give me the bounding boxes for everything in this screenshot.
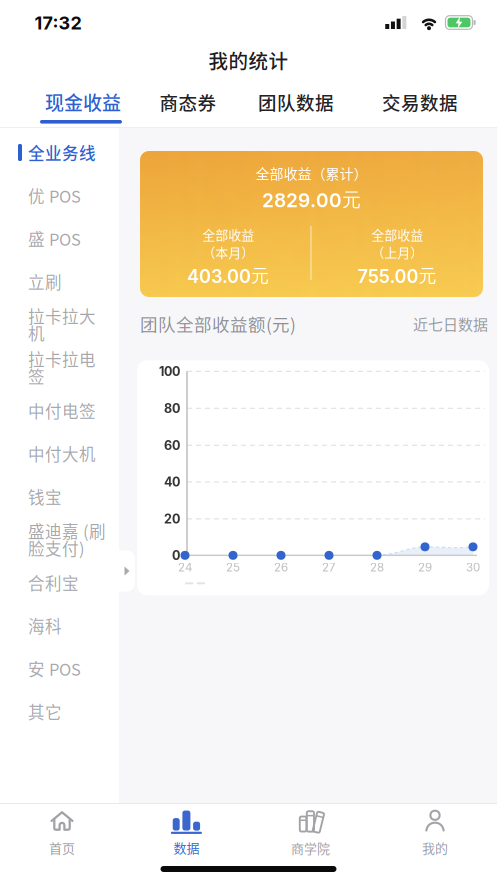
staticText: 交易数据 <box>382 89 458 115</box>
staticText: 拉卡拉电 签 <box>28 350 96 385</box>
button[interactable]: 安 POS <box>0 647 119 690</box>
staticText: 现金收益 <box>45 88 121 116</box>
staticText: 0 <box>172 548 180 563</box>
staticText: 80 <box>164 401 180 416</box>
staticText: 盛 POS <box>28 230 81 247</box>
button[interactable]: 商态券 <box>159 89 216 115</box>
staticText: 其它 <box>28 703 62 720</box>
button[interactable]: 其它 <box>0 690 119 733</box>
staticText: 我的 <box>422 838 448 857</box>
staticText: 安 POS <box>28 660 81 677</box>
staticText: 2829.00元 <box>262 188 361 212</box>
staticText: 20 <box>164 511 180 526</box>
button[interactable]: 中付电签 <box>0 389 119 432</box>
button[interactable]: 交易数据 <box>382 89 458 115</box>
button[interactable]: 合利宝 <box>0 561 119 604</box>
button[interactable]: 盛 POS <box>0 217 119 260</box>
staticText: 盛迪嘉 (刷 脸支付) <box>28 522 106 557</box>
button[interactable]: 商学院 <box>249 806 373 860</box>
staticText: 25 <box>226 560 240 574</box>
button[interactable]: 中付大机 <box>0 432 119 475</box>
button[interactable]: 数据 <box>124 806 248 860</box>
staticText: 海科 <box>28 617 62 634</box>
staticText: 钱宝 <box>28 488 62 505</box>
staticText: 60 <box>164 438 180 453</box>
staticText: 全部收益（累计） <box>255 163 367 183</box>
button[interactable]: 我的 <box>373 806 497 860</box>
staticText: 优 POS <box>28 187 81 204</box>
staticText: 团队全部收益额(元) <box>140 311 296 336</box>
staticText: 全业务线 <box>28 144 96 161</box>
staticText: 中付电签 <box>28 402 96 419</box>
staticText: 首页 <box>49 838 75 857</box>
staticText: 29 <box>418 560 432 574</box>
staticText: 100 <box>159 364 180 379</box>
staticText: 17:32 <box>34 12 81 34</box>
button[interactable]: 优 POS <box>0 174 119 217</box>
staticText: 24 <box>178 560 192 574</box>
staticText: 755.00元 <box>357 265 436 287</box>
staticText: 近七日数据 <box>413 313 488 334</box>
button[interactable]: 全业务线 <box>0 131 119 174</box>
button[interactable]: 拉卡拉大 机 <box>0 303 119 346</box>
staticText: 商态券 <box>159 89 216 115</box>
button[interactable]: 钱宝 <box>0 475 119 518</box>
button[interactable]: 盛迪嘉 (刷 脸支付) <box>0 518 119 561</box>
staticText: 立刷 <box>28 273 62 290</box>
staticText: 全部收益 （本月） <box>202 225 254 261</box>
staticText: 40 <box>164 474 180 489</box>
button[interactable]: 立刷 <box>0 260 119 303</box>
button[interactable]: 现金收益 <box>45 88 121 116</box>
staticText: 全部收益 （上月） <box>371 225 423 261</box>
staticText: 商学院 <box>291 838 330 857</box>
staticText: 团队数据 <box>258 89 334 115</box>
staticText: 拉卡拉大 机 <box>28 307 96 342</box>
staticText: 403.00元 <box>187 265 269 287</box>
staticText: 28 <box>370 560 384 574</box>
staticText: 中付大机 <box>28 445 96 462</box>
button[interactable]: 海科 <box>0 604 119 647</box>
button[interactable]: 拉卡拉电 签 <box>0 346 119 389</box>
staticText: 数据 <box>173 838 199 857</box>
staticText: 27 <box>322 560 336 574</box>
staticText: 26 <box>274 560 288 574</box>
button[interactable]: 首页 <box>0 806 124 860</box>
button[interactable]: 收起侧栏 <box>119 550 135 591</box>
staticText: 30 <box>466 560 480 574</box>
staticText: 合利宝 <box>28 574 79 591</box>
button[interactable]: 团队数据 <box>258 89 334 115</box>
staticText: 我的统计 <box>208 46 288 74</box>
